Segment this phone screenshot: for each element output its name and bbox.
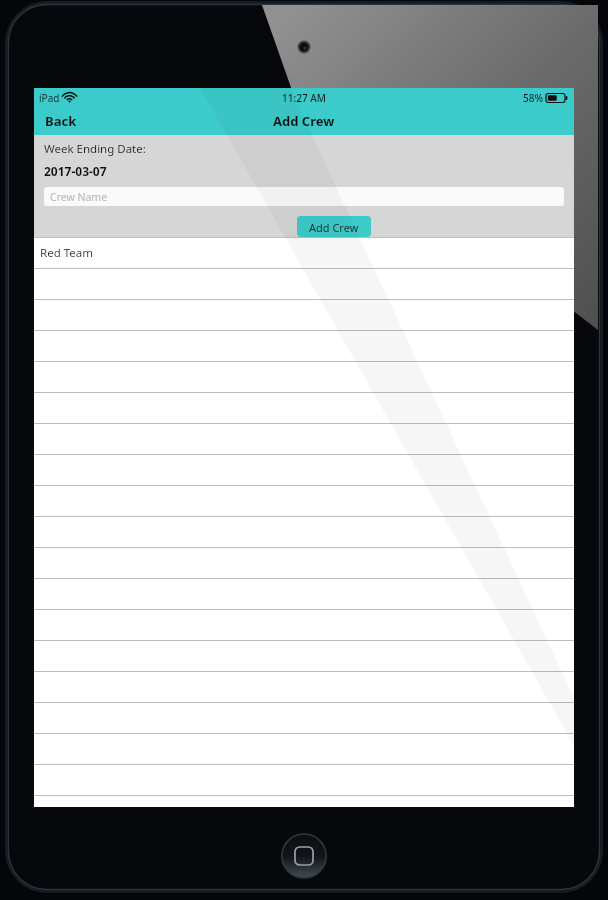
button[interactable] [34,269,574,299]
staticText: Week Ending Date: [44,141,146,157]
button[interactable]: Crew Name [44,187,564,206]
button[interactable]: Red Team [34,238,574,268]
staticText: 11:27 AM [282,91,326,105]
staticText: Red Team [40,245,93,261]
staticText: Add Crew [309,220,359,233]
staticText: Add Crew [273,112,335,130]
staticText: Back [45,112,77,130]
button[interactable]: Back [34,108,88,134]
staticText: Crew Name [50,190,108,204]
button[interactable]: Add Crew [297,216,371,237]
staticText: 2017-03-07 [44,163,107,179]
staticText: iPad [39,91,60,105]
staticText: 58% [523,91,543,105]
